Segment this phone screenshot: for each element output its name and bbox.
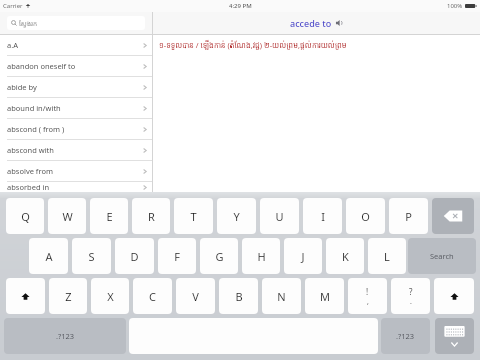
staticText: ,	[367, 297, 369, 307]
button[interactable]: .?123	[4, 318, 126, 354]
button[interactable]: Pronounce	[335, 19, 343, 27]
staticText: ស្វែងរក	[19, 19, 38, 28]
staticText: E	[106, 209, 113, 224]
staticText: Y	[233, 209, 240, 224]
staticText: X	[107, 289, 114, 304]
button[interactable]: B	[219, 278, 258, 314]
staticText: J	[301, 249, 305, 264]
staticText: absolve from	[7, 166, 143, 176]
button[interactable]: X	[91, 278, 129, 314]
staticText: absorbed in	[7, 182, 143, 192]
staticText: Q	[21, 209, 30, 224]
button[interactable]: Z	[49, 278, 87, 314]
staticText: N	[277, 289, 286, 304]
staticText: P	[405, 209, 412, 224]
button[interactable]: absolve from	[0, 161, 152, 181]
staticText: T	[190, 209, 197, 224]
button[interactable]: U	[260, 198, 299, 234]
button[interactable]: Backspace	[432, 198, 474, 234]
button[interactable]: R	[132, 198, 170, 234]
button[interactable]: C	[133, 278, 172, 314]
button[interactable]: Shift	[6, 278, 45, 314]
staticText: A	[45, 249, 53, 264]
staticText: Z	[65, 289, 72, 304]
staticText: L	[384, 249, 390, 264]
staticText: B	[235, 289, 243, 304]
staticText: a.A	[7, 40, 143, 50]
staticText: G	[215, 249, 224, 264]
staticText: accede to	[290, 17, 332, 29]
button[interactable]: Y	[217, 198, 256, 234]
staticText: O	[361, 209, 370, 224]
staticText: 100%	[447, 2, 463, 10]
button[interactable]: S	[72, 238, 111, 274]
button[interactable]: G	[200, 238, 238, 274]
button[interactable]: V	[176, 278, 215, 314]
button[interactable]: abide by	[0, 77, 152, 97]
button[interactable]: !	[348, 278, 387, 314]
staticText: abide by	[7, 82, 143, 92]
staticText: Search	[430, 251, 454, 261]
staticText: R	[148, 209, 155, 224]
button[interactable]: abscond with	[0, 140, 152, 160]
button[interactable]: a.A	[0, 35, 152, 55]
button[interactable]: H	[242, 238, 280, 274]
button[interactable]: ?	[391, 278, 430, 314]
staticText: D	[130, 249, 139, 264]
button[interactable]: Search	[408, 238, 476, 274]
button[interactable]: L	[368, 238, 406, 274]
staticText: M	[320, 289, 330, 304]
staticText: H	[257, 249, 266, 264]
staticText: .	[410, 297, 412, 307]
button[interactable]: Q	[6, 198, 44, 234]
button[interactable]: Shift	[434, 278, 474, 314]
staticText: V	[192, 289, 199, 304]
button[interactable]: Hide keyboard	[435, 318, 474, 354]
button[interactable]: O	[346, 198, 385, 234]
staticText: abscond with	[7, 145, 143, 155]
staticText: F	[174, 249, 180, 264]
staticText: abandon oneself to	[7, 61, 143, 71]
button[interactable]: ស្វែងរក	[7, 16, 145, 30]
button[interactable]: abandon oneself to	[0, 56, 152, 76]
staticText: ១-ទទួលបាន / ឡើងកាន់ (តំណែង,វជ្ជ) ២-យល់ព្…	[159, 40, 347, 50]
button[interactable]: K	[326, 238, 364, 274]
staticText: I	[321, 209, 325, 224]
button[interactable]: accede to	[288, 15, 345, 31]
staticText: U	[275, 209, 284, 224]
staticText: !	[366, 286, 369, 297]
staticText: K	[342, 249, 349, 264]
button[interactable]: J	[284, 238, 322, 274]
staticText: abscond ( from )	[7, 124, 143, 134]
staticText: .?123	[396, 331, 415, 341]
button[interactable]: M	[305, 278, 344, 314]
staticText: W	[62, 209, 73, 224]
staticText: C	[149, 289, 156, 304]
button[interactable]: P	[389, 198, 428, 234]
button[interactable]: absorbed in	[0, 182, 152, 192]
button[interactable]: F	[158, 238, 196, 274]
staticText: 4:29 PM	[229, 2, 252, 10]
button[interactable]: .?123	[381, 318, 430, 354]
staticText: S	[88, 249, 95, 264]
button[interactable]: T	[174, 198, 213, 234]
button[interactable]: A	[29, 238, 68, 274]
button[interactable]: abscond ( from )	[0, 119, 152, 139]
button[interactable]: N	[262, 278, 301, 314]
button[interactable]: I	[303, 198, 342, 234]
button[interactable]: abound in/with	[0, 98, 152, 118]
staticText: ?	[409, 286, 413, 297]
button[interactable]: W	[48, 198, 86, 234]
staticText: abound in/with	[7, 103, 143, 113]
staticText: Carrier	[3, 2, 23, 10]
staticText: .?123	[56, 331, 75, 341]
button[interactable]: E	[90, 198, 128, 234]
button[interactable]: D	[115, 238, 154, 274]
